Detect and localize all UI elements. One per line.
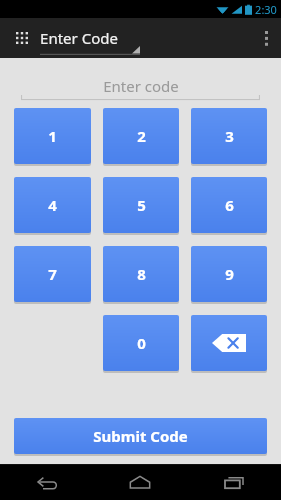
staticText: 5	[137, 195, 146, 215]
button[interactable]: 6	[191, 177, 267, 233]
button[interactable]: More options	[251, 18, 281, 58]
button[interactable]: 1	[14, 108, 91, 164]
button[interactable]: 5	[103, 177, 179, 233]
staticText: 3	[225, 126, 234, 146]
staticText: 8	[137, 264, 146, 284]
staticText: 1	[48, 126, 57, 146]
button[interactable]: Backspace	[191, 315, 267, 371]
staticText: 4	[48, 195, 57, 215]
button[interactable]: Enter Code	[40, 21, 140, 55]
button[interactable]: 0	[103, 315, 179, 371]
button[interactable]: 9	[191, 246, 267, 302]
staticText: Enter code	[103, 76, 179, 96]
button[interactable]: 8	[103, 246, 179, 302]
button[interactable]: Back	[0, 464, 93, 500]
button[interactable]: Recent apps	[187, 464, 281, 500]
button[interactable]: 3	[191, 108, 267, 164]
staticText: 2	[137, 126, 146, 146]
button[interactable]: 2	[103, 108, 179, 164]
button[interactable]: 4	[14, 177, 91, 233]
staticText: Submit Code	[93, 426, 188, 446]
button[interactable]: Submit Code	[14, 418, 267, 454]
staticText: Enter Code	[40, 28, 118, 48]
staticText: 0	[137, 333, 146, 353]
staticText: 9	[225, 264, 234, 284]
button[interactable]: Enter code	[21, 76, 260, 100]
button[interactable]: 7	[14, 246, 91, 302]
staticText: 7	[48, 264, 57, 284]
staticText: 6	[225, 195, 234, 215]
button[interactable]: Home	[93, 464, 187, 500]
staticText: 2:30	[255, 2, 277, 17]
button[interactable]: Apps	[8, 24, 36, 52]
